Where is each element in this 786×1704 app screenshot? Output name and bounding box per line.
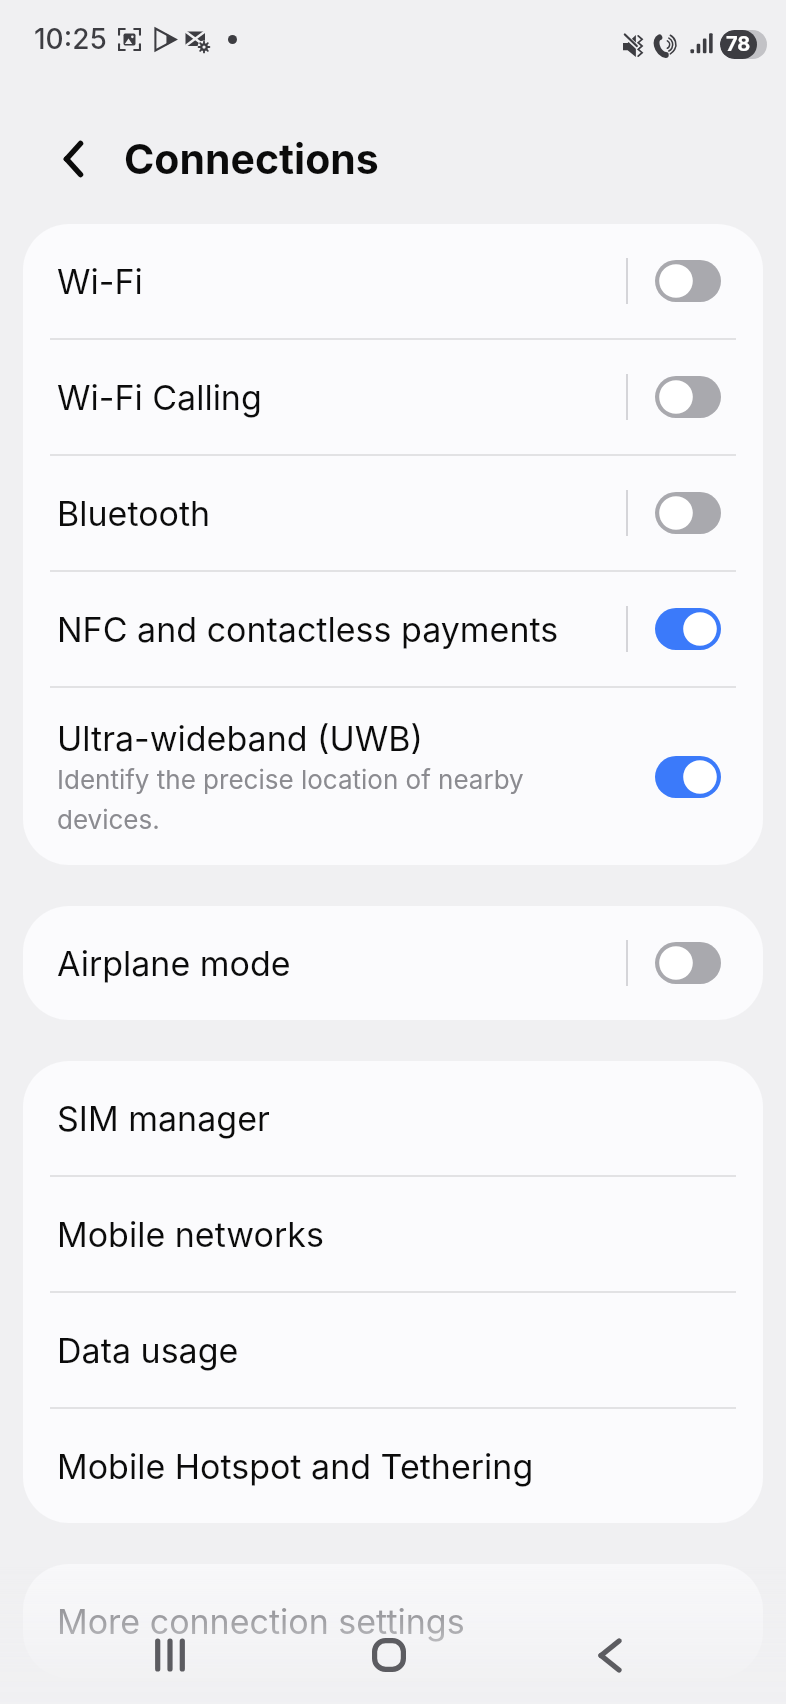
button[interactable]: SIM manager [23, 1061, 763, 1175]
button[interactable]: Bluetooth [23, 456, 763, 570]
button[interactable]: Mobile networks [23, 1177, 763, 1291]
button[interactable]: Navigate up [25, 111, 121, 207]
staticText: Wi-Fi Calling [57, 377, 626, 418]
staticText: Connections [124, 134, 379, 184]
button[interactable]: Wi-Fi Calling [23, 340, 763, 454]
button[interactable]: Ultra-wideband (UWB) [23, 688, 763, 865]
staticText: NFC and contactless payments [57, 609, 626, 650]
staticText: Identify the precise location of nearby … [57, 764, 524, 835]
button[interactable]: On [655, 608, 721, 650]
button[interactable]: On [655, 756, 721, 798]
staticText: Ultra-wideband (UWB) [57, 718, 423, 759]
staticText: 10:25 [34, 22, 107, 56]
button[interactable]: More connection settings [23, 1564, 763, 1678]
staticText: Airplane mode [57, 943, 626, 984]
staticText: Data usage [57, 1330, 239, 1371]
button[interactable]: Off [655, 492, 721, 534]
button[interactable]: Off [655, 376, 721, 418]
staticText: Mobile networks [57, 1214, 324, 1255]
button[interactable]: Home [330, 1610, 448, 1700]
button[interactable]: Airplane mode [23, 906, 763, 1020]
button[interactable]: Back [551, 1610, 669, 1700]
staticText: More connection settings [57, 1601, 465, 1642]
button[interactable]: Wi-Fi [23, 224, 763, 338]
staticText: Wi-Fi [57, 261, 626, 302]
staticText: Mobile Hotspot and Tethering [57, 1446, 534, 1487]
button[interactable]: NFC and contactless payments [23, 572, 763, 686]
button[interactable]: Off [655, 260, 721, 302]
button[interactable]: Mobile Hotspot and Tethering [23, 1409, 763, 1523]
staticText: Bluetooth [57, 493, 626, 534]
staticText: 78 [726, 32, 751, 56]
button[interactable]: Recent apps [111, 1610, 229, 1700]
staticText: SIM manager [57, 1098, 270, 1139]
button[interactable]: Data usage [23, 1293, 763, 1407]
button[interactable]: Off [655, 942, 721, 984]
